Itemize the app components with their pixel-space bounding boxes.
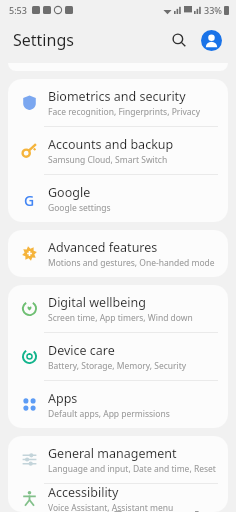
staticText: Biometrics and security [48, 88, 186, 105]
staticText: Digital wellbeing [48, 294, 146, 311]
staticText: Google [48, 184, 91, 201]
button[interactable]: Accounts and backup [8, 127, 228, 174]
staticText: Motions and gestures, One-handed mode [48, 257, 215, 269]
button[interactable]: Apps [8, 381, 228, 428]
button[interactable]: Advanced features [8, 230, 228, 277]
button[interactable]: G [8, 175, 228, 222]
staticText: Face recognition, Fingerprints, Privacy [48, 106, 200, 118]
button[interactable]: Account [196, 25, 226, 55]
staticText: 5:53 [9, 4, 27, 16]
staticText: Language and input, Date and time, Reset [48, 463, 216, 475]
staticText: Screen time, App timers, Wind down [48, 312, 193, 324]
button[interactable]: Search [164, 25, 194, 55]
button[interactable]: Biometrics and security [8, 79, 228, 126]
button[interactable]: Accessibility [8, 484, 228, 512]
staticText: Device care [48, 342, 115, 359]
staticText: Advanced features [48, 239, 158, 256]
staticText: Accessibility [48, 484, 119, 501]
button[interactable]: General management [8, 436, 228, 483]
staticText: Google settings [48, 202, 111, 214]
staticText: 33% [204, 4, 222, 16]
button[interactable]: Device care [8, 333, 228, 380]
staticText: Settings [13, 29, 74, 51]
staticText: G [24, 191, 35, 206]
staticText: Apps [48, 390, 78, 407]
staticText: General management [48, 445, 177, 462]
staticText: Samsung Cloud, Smart Switch [48, 154, 168, 166]
button[interactable]: Digital wellbeing [8, 285, 228, 332]
staticText: Battery, Storage, Memory, Security [48, 360, 187, 372]
staticText: Accounts and backup [48, 136, 174, 153]
staticText: Voice Assistant, Assistant menu [48, 502, 174, 512]
staticText: Default apps, App permissions [48, 408, 170, 420]
